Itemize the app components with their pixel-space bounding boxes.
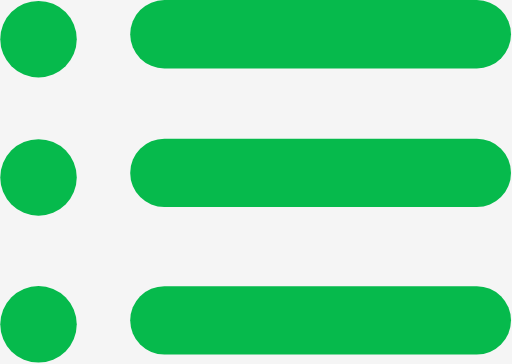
button[interactable]: List item 2 bbox=[0, 108, 512, 253]
button[interactable]: List item 3 bbox=[0, 253, 512, 364]
button[interactable]: List item 1 bbox=[0, 0, 512, 108]
